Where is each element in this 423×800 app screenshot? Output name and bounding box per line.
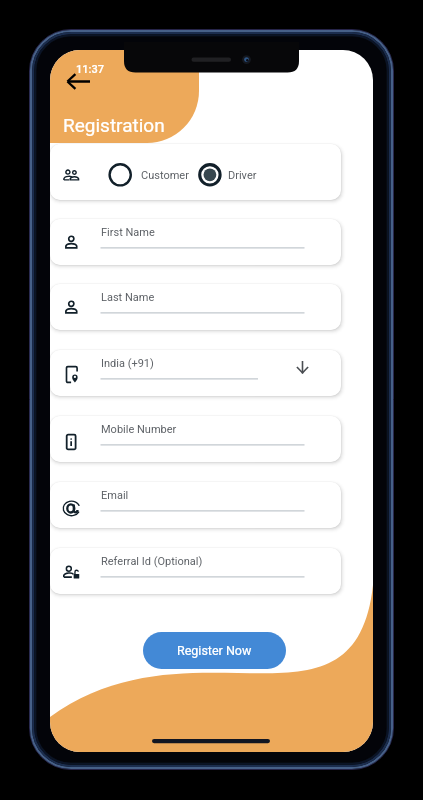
button[interactable]: Referral Id (Optional) (50, 548, 341, 594)
staticText: Register Now (177, 643, 252, 658)
staticText: Referral Id (Optional) (101, 555, 203, 568)
button[interactable]: First Name (50, 219, 341, 265)
staticText: Last Name (101, 291, 155, 304)
button[interactable]: Customer (50, 144, 341, 200)
button[interactable]: Customer (108, 161, 193, 189)
staticText: India (+91) (101, 357, 154, 370)
button[interactable]: Driver (198, 161, 271, 189)
staticText: Mobile Number (101, 423, 177, 436)
button[interactable]: Email (50, 482, 341, 528)
staticText: 11:37 (76, 63, 104, 76)
button[interactable]: India (+91) (50, 350, 341, 396)
button[interactable]: Register Now (143, 632, 286, 669)
staticText: Registration (63, 114, 165, 136)
staticText: Email (101, 489, 129, 502)
button[interactable]: Mobile Number (50, 416, 341, 462)
button[interactable]: Back (50, 59, 94, 103)
staticText: First Name (101, 226, 155, 239)
staticText: Driver (228, 169, 257, 182)
button[interactable]: Last Name (50, 284, 341, 330)
staticText: Customer (141, 169, 189, 182)
